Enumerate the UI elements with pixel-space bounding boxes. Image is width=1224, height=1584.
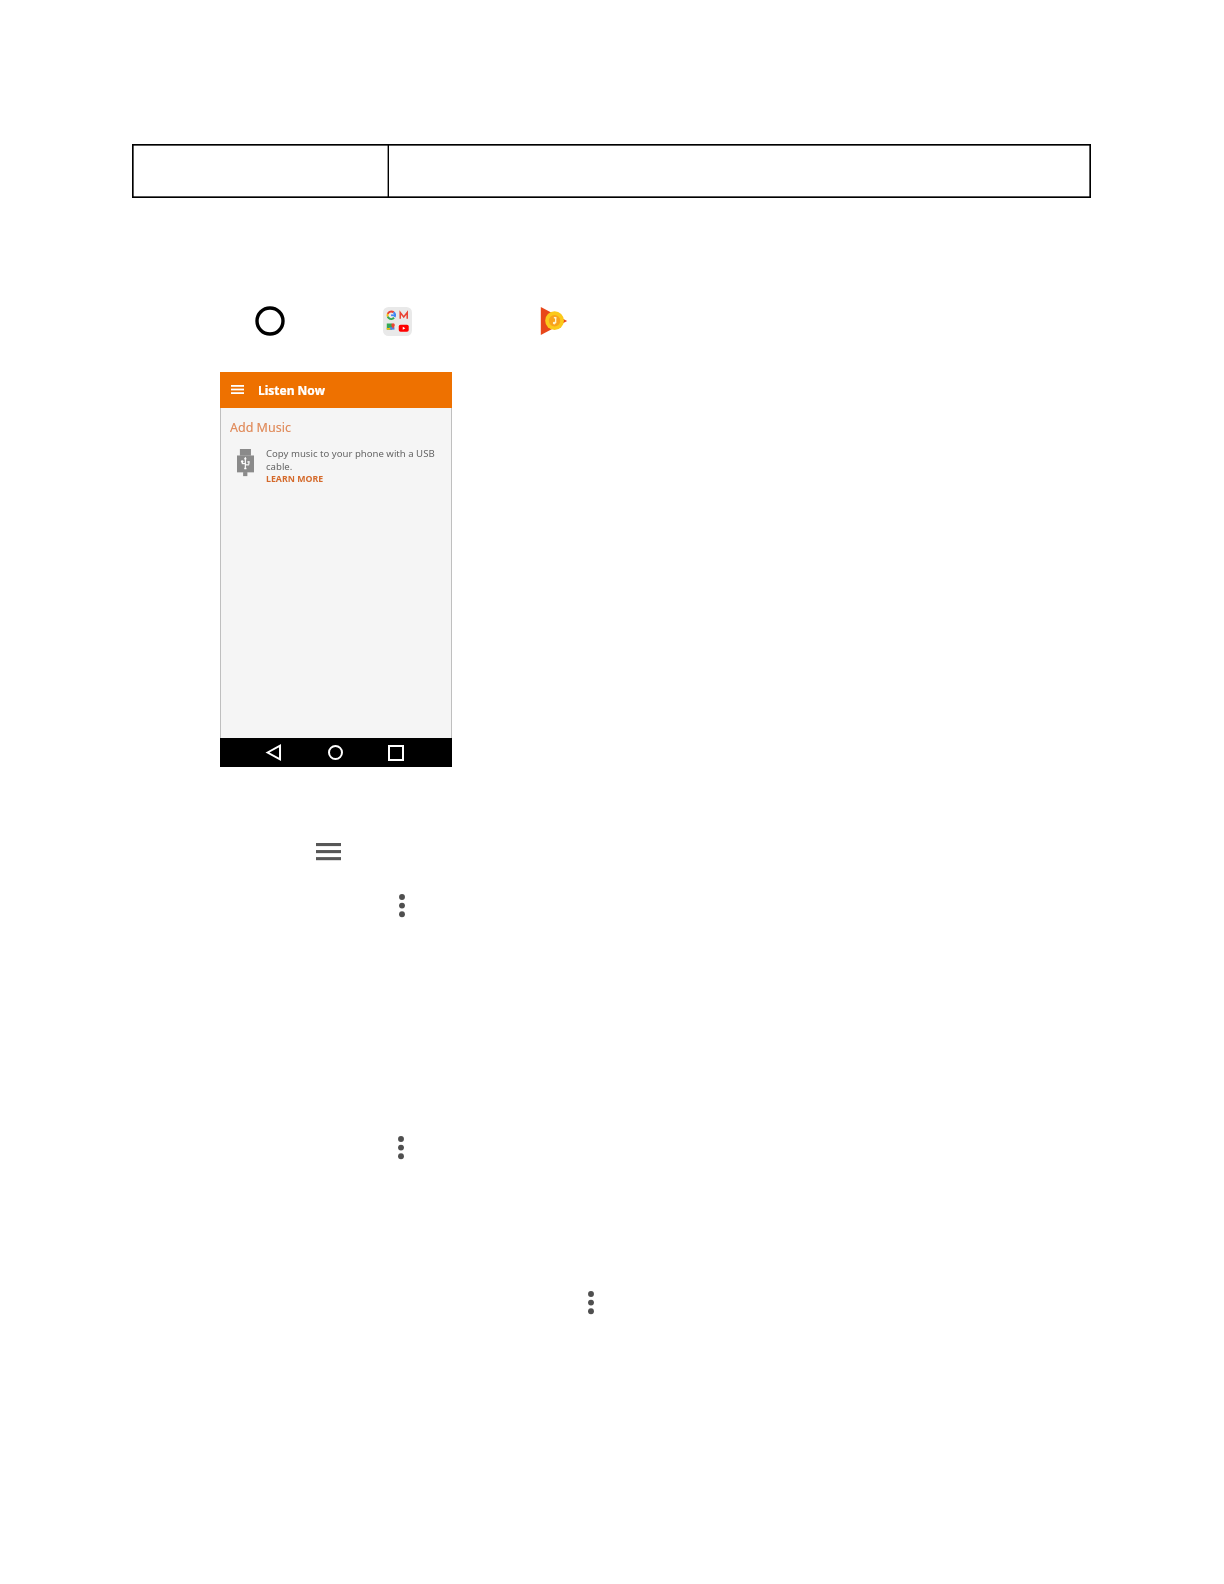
button[interactable]: Back <box>267 745 281 760</box>
button[interactable]: Home <box>328 745 343 760</box>
button[interactable]: Google apps folder <box>383 307 412 336</box>
staticText: Add Music <box>230 419 291 436</box>
staticText: Listen Now <box>258 382 325 398</box>
button[interactable]: More options <box>395 890 409 921</box>
staticText: Copy music to your phone with a USB cabl… <box>266 447 442 473</box>
button[interactable]: Navigation drawer <box>220 372 452 408</box>
button[interactable]: Google Play Music <box>540 306 568 336</box>
button[interactable]: More options <box>394 1132 408 1163</box>
button[interactable]: Menu <box>316 843 341 861</box>
button[interactable]: Navigation drawer <box>231 385 244 394</box>
staticText: LEARN MORE <box>266 473 324 485</box>
button[interactable]: Recent apps <box>388 745 404 761</box>
button[interactable]: Home <box>255 306 285 336</box>
button[interactable]: More options <box>584 1287 598 1318</box>
button[interactable]: LEARN MORE <box>266 473 324 485</box>
